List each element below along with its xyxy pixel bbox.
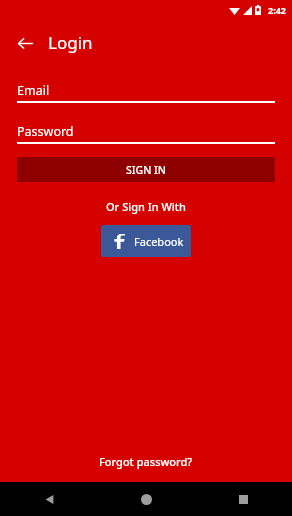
button[interactable]: Password (17, 120, 275, 142)
button[interactable]: Forgot password? (91, 450, 201, 473)
button[interactable]: SIGN IN (17, 157, 275, 182)
button[interactable]: Home (98, 482, 195, 516)
button[interactable]: Recent apps (195, 482, 292, 516)
staticText: Facebook (134, 234, 184, 249)
staticText: Forgot password? (99, 454, 193, 469)
button[interactable]: Back (10, 28, 40, 58)
staticText: Password (17, 123, 74, 140)
staticText: 2:42 (268, 4, 286, 16)
staticText: Or Sign In With (106, 199, 186, 214)
staticText: SIGN IN (126, 163, 166, 177)
button[interactable]: Email (17, 79, 275, 101)
staticText: Email (17, 82, 50, 99)
button[interactable]: Back (0, 482, 98, 516)
staticText: Login (48, 31, 93, 54)
button[interactable]: Facebook (101, 225, 191, 257)
